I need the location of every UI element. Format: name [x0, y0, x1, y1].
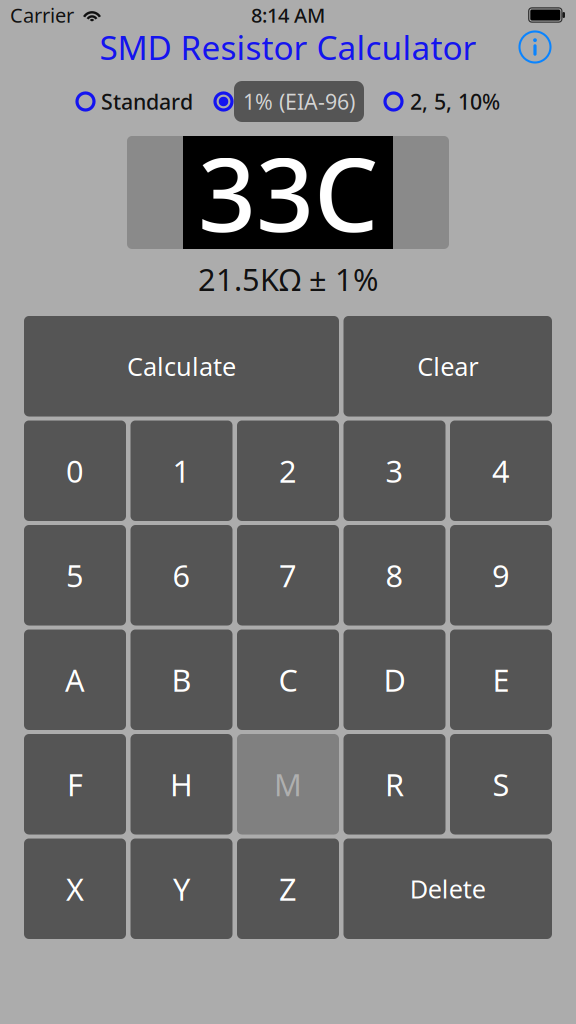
staticText: 2 — [279, 450, 297, 491]
button[interactable]: 8 — [343, 525, 445, 625]
staticText: C — [278, 659, 297, 700]
staticText: Carrier — [10, 2, 74, 28]
staticText: B — [171, 659, 191, 700]
button[interactable]: Y — [130, 838, 232, 939]
staticText: 1% (EIA-96) — [243, 87, 355, 116]
staticText: 8:14 AM — [251, 2, 325, 28]
staticText: 6 — [172, 555, 190, 596]
button[interactable]: 6 — [130, 525, 232, 625]
staticText: H — [170, 764, 193, 805]
staticText: 21.5KΩ ± 1% — [198, 259, 378, 299]
button[interactable]: 4 — [450, 420, 552, 521]
staticText: 33C — [198, 125, 378, 260]
staticText: Calculate — [127, 349, 236, 383]
staticText: 9 — [492, 555, 510, 596]
staticText: Z — [279, 868, 297, 909]
staticText: 2, 5, 10% — [410, 87, 500, 116]
button[interactable]: X — [24, 838, 126, 939]
staticText: 1 — [172, 450, 190, 491]
staticText: M — [274, 764, 302, 805]
staticText: 8 — [385, 555, 403, 596]
button[interactable]: 2 — [237, 420, 339, 521]
button[interactable]: Standard — [75, 81, 190, 122]
staticText: X — [66, 868, 84, 909]
button[interactable]: Clear — [343, 316, 552, 416]
button[interactable]: M — [237, 734, 339, 834]
button[interactable]: H — [130, 734, 232, 834]
button[interactable]: 1% (EIA-96) — [213, 81, 364, 122]
staticText: Delete — [410, 872, 486, 905]
button[interactable]: 0 — [24, 420, 126, 521]
button[interactable]: Calculate — [24, 316, 339, 416]
button[interactable]: B — [130, 629, 232, 730]
staticText: D — [383, 659, 405, 700]
staticText: SMD Resistor Calculator — [99, 25, 476, 69]
button[interactable]: S — [450, 734, 552, 834]
button[interactable]: 7 — [237, 525, 339, 625]
staticText: F — [67, 764, 83, 805]
button[interactable]: C — [237, 629, 339, 730]
staticText: R — [385, 764, 404, 805]
staticText: 7 — [279, 555, 297, 596]
button[interactable]: 5 — [24, 525, 126, 625]
button[interactable]: 9 — [450, 525, 552, 625]
staticText: E — [492, 659, 509, 700]
button[interactable]: 1 — [130, 420, 232, 521]
staticText: Y — [173, 868, 190, 909]
button[interactable]: D — [343, 629, 445, 730]
staticText: A — [65, 659, 85, 700]
staticText: 5 — [66, 555, 84, 596]
button[interactable]: 3 — [343, 420, 445, 521]
staticText: S — [492, 764, 509, 805]
button[interactable]: A — [24, 629, 126, 730]
button[interactable]: R — [343, 734, 445, 834]
button[interactable]: Info — [513, 25, 557, 69]
button[interactable]: Delete — [343, 838, 552, 939]
staticText: 4 — [492, 450, 510, 491]
staticText: 0 — [66, 450, 84, 491]
button[interactable]: Z — [237, 838, 339, 939]
staticText: 3 — [385, 450, 403, 491]
button[interactable]: 2, 5, 10% — [383, 81, 501, 122]
staticText: Clear — [417, 349, 478, 383]
button[interactable]: E — [450, 629, 552, 730]
staticText: Standard — [101, 87, 193, 116]
button[interactable]: F — [24, 734, 126, 834]
